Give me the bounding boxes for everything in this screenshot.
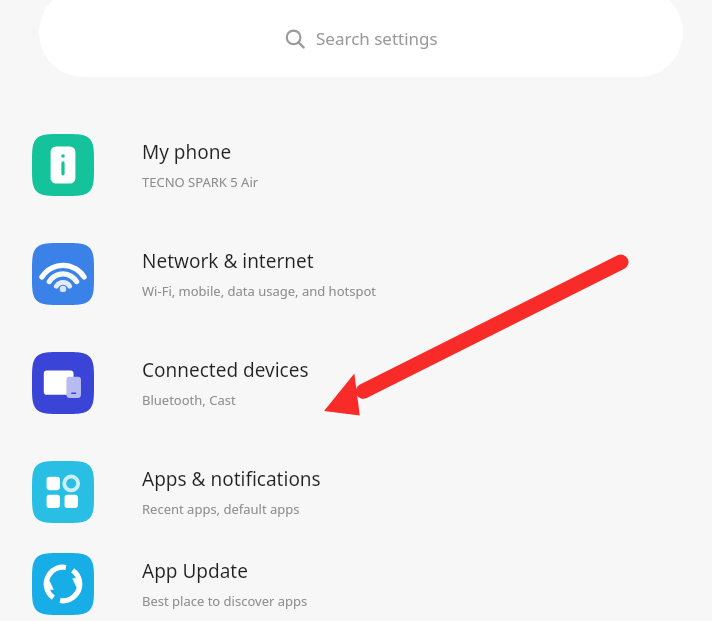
button[interactable]: My phone [0,110,712,219]
staticText: Best place to discover apps [142,592,308,610]
button[interactable]: Search settings [39,0,683,77]
staticText: TECNO SPARK 5 Air [142,173,259,191]
other: App Update [32,553,94,615]
other: Connected devices [32,352,94,414]
button[interactable]: App Update [0,546,712,621]
staticText: Apps & notifications [142,466,321,492]
staticText: Recent apps, default apps [142,500,300,518]
button[interactable]: Connected devices [0,328,712,437]
staticText: Bluetooth, Cast [142,391,236,409]
staticText: Connected devices [142,357,309,383]
button[interactable]: Network & internet [0,219,712,328]
other: Apps & notifications [32,461,94,523]
staticText: Wi-Fi, mobile, data usage, and hotspot [142,282,376,300]
other: My phone [32,134,94,196]
button[interactable]: Apps & notifications [0,437,712,546]
staticText: App Update [142,558,248,584]
staticText: Search settings [316,27,438,50]
staticText: Network & internet [142,248,314,274]
staticText: My phone [142,139,232,165]
other: Network & internet [32,243,94,305]
